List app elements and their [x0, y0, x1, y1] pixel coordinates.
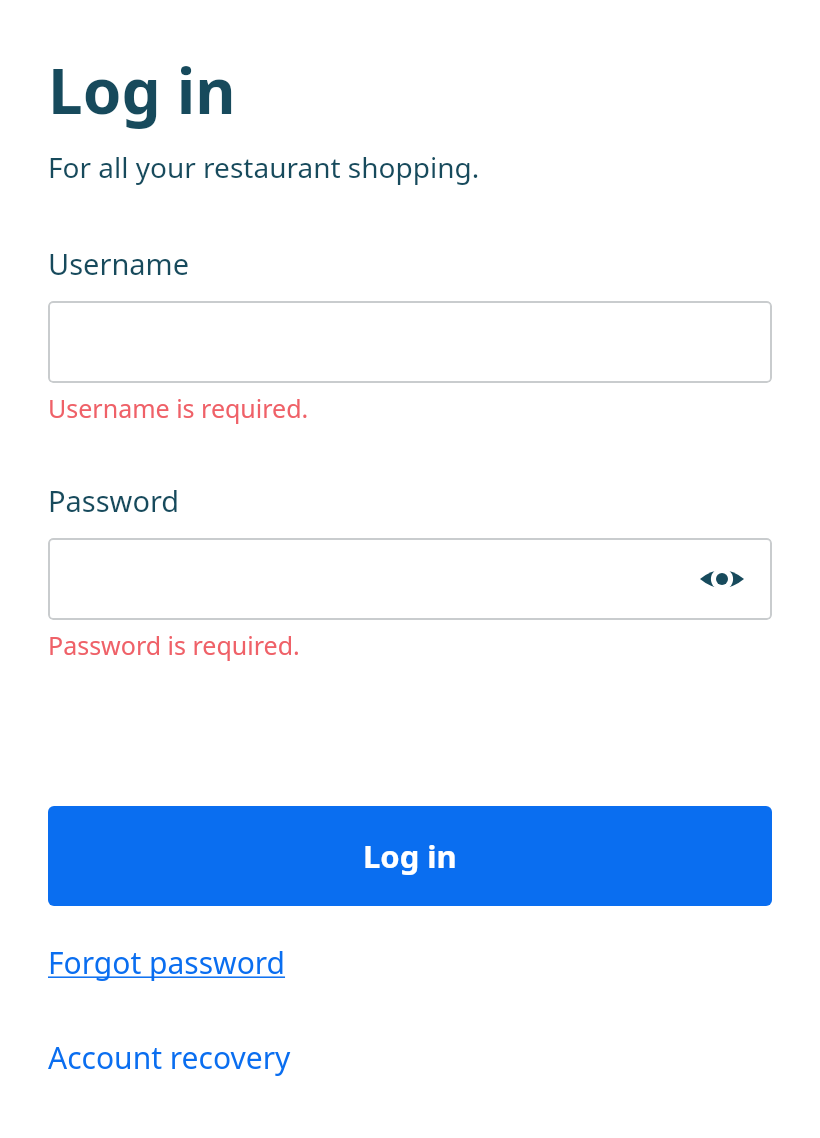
- button[interactable]: Show password: [48, 538, 772, 620]
- staticText: Username is required.: [48, 391, 309, 425]
- staticText: Log in: [48, 48, 236, 132]
- button[interactable]: Forgot password: [48, 942, 286, 983]
- button[interactable]: [48, 301, 772, 383]
- staticText: Forgot password: [48, 942, 286, 983]
- button[interactable]: Log in: [48, 806, 772, 906]
- staticText: Password is required.: [48, 628, 300, 662]
- staticText: Password: [48, 481, 180, 520]
- button[interactable]: Account recovery: [48, 1037, 291, 1078]
- button[interactable]: Show password: [698, 555, 746, 603]
- staticText: Username: [48, 244, 190, 283]
- staticText: For all your restaurant shopping.: [48, 148, 480, 186]
- staticText: Account recovery: [48, 1037, 291, 1078]
- staticText: Log in: [363, 835, 457, 877]
